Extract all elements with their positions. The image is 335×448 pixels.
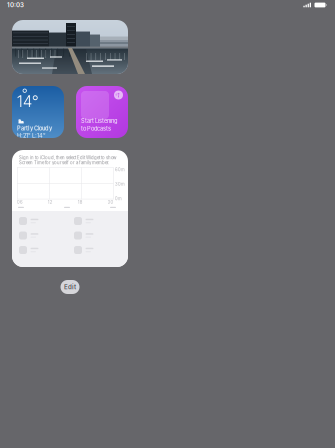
staticText: 00 xyxy=(107,200,113,205)
button[interactable]: Weather, 14 degrees, Partly Cloudy xyxy=(12,86,64,138)
staticText: to Podcasts xyxy=(81,125,111,132)
staticText: 18 xyxy=(78,200,83,205)
staticText: 06 xyxy=(17,200,23,205)
button[interactable]: Podcasts, Start Listening to Podcasts xyxy=(76,86,128,138)
staticText: Partly Cloudy xyxy=(17,125,52,132)
staticText: 0m xyxy=(115,196,122,201)
staticText: Sign in to iCloud, then select Edit Widg… xyxy=(19,155,116,165)
staticText: 60m xyxy=(115,167,125,172)
staticText: 14° xyxy=(17,92,38,111)
staticText: H:21° L:14° xyxy=(17,132,46,139)
staticText: 30m xyxy=(115,182,125,187)
button[interactable]: Edit xyxy=(60,280,79,294)
staticText: Start Listening xyxy=(81,118,117,124)
button[interactable]: Photos widget xyxy=(12,20,128,74)
staticText: 12 xyxy=(48,200,53,205)
staticText: 10:03 xyxy=(7,1,24,9)
staticText: Edit xyxy=(64,283,76,291)
